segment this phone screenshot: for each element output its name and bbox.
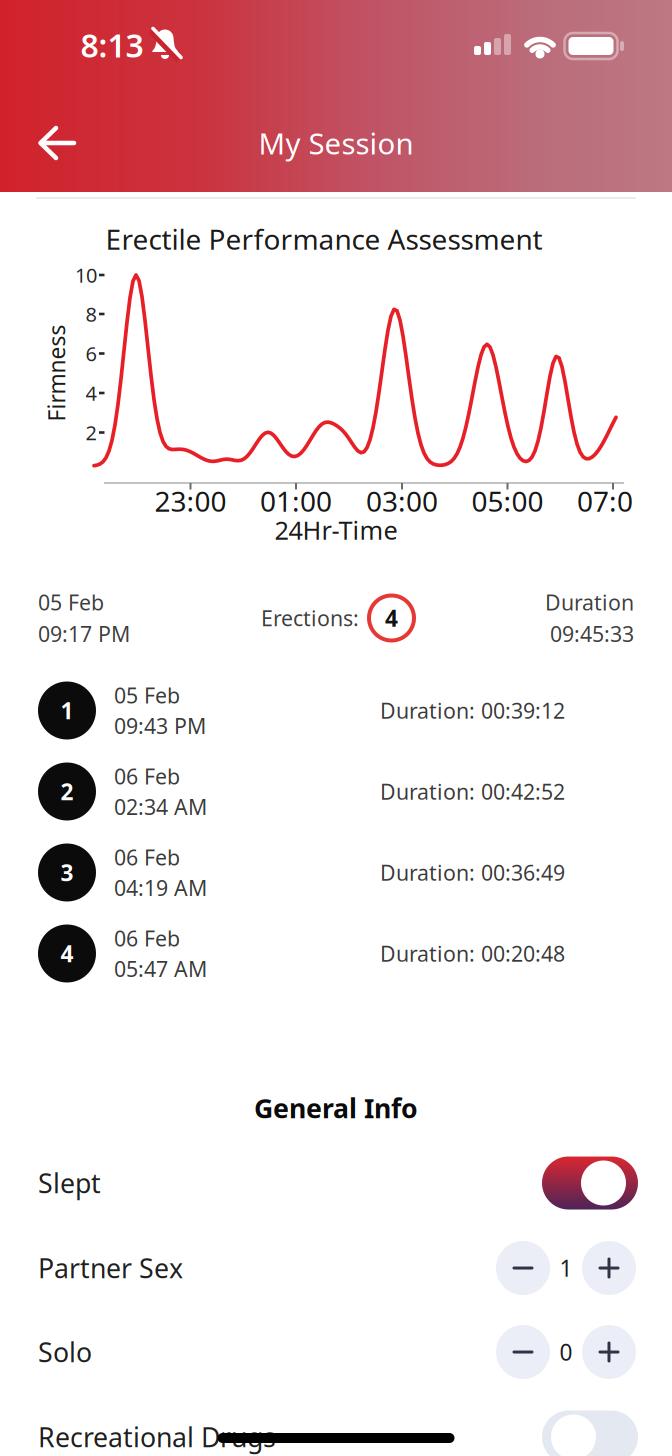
staticText: 8:13: [80, 24, 143, 66]
staticText: Duration: 00:20:48: [380, 939, 565, 968]
button[interactable]: Off: [542, 1410, 638, 1456]
staticText: Duration: 00:39:12: [380, 696, 565, 725]
staticText: 23:00: [154, 482, 226, 520]
staticText: 05 Feb: [114, 681, 180, 709]
button[interactable]: On: [542, 1156, 638, 1209]
staticText: Duration: 00:36:49: [380, 858, 565, 887]
staticText: Duration: 00:42:52: [380, 777, 565, 806]
staticText: 4: [385, 603, 398, 633]
staticText: 10: [75, 262, 97, 288]
staticText: 0: [559, 1337, 572, 1367]
staticText: 4: [60, 938, 73, 968]
staticText: 09:45:33: [550, 619, 634, 648]
staticText: General Info: [254, 1090, 418, 1126]
staticText: 2: [60, 776, 73, 806]
button[interactable]: Back: [19, 105, 95, 181]
staticText: Slept: [38, 1165, 101, 1201]
staticText: Partner Sex: [38, 1250, 183, 1286]
staticText: 05:00: [471, 482, 543, 520]
staticText: Recreational Drugs: [38, 1419, 276, 1455]
staticText: 03:00: [366, 482, 438, 520]
staticText: 8: [85, 301, 96, 327]
staticText: 2: [85, 419, 96, 446]
staticText: 04:19 AM: [114, 873, 207, 902]
staticText: 6: [85, 340, 96, 367]
staticText: 06 Feb: [114, 762, 180, 790]
staticText: Erectile Performance Assessment: [105, 220, 542, 258]
staticText: 07:0: [577, 482, 633, 520]
staticText: My Session: [258, 123, 413, 162]
staticText: 01:00: [260, 482, 332, 520]
staticText: 24Hr-Time: [274, 513, 397, 547]
staticText: Duration: [545, 588, 634, 616]
staticText: 3: [60, 857, 73, 887]
staticText: 06 Feb: [114, 843, 180, 871]
button[interactable]: Decrement: [496, 1325, 550, 1379]
staticText: Firmness: [8, 358, 105, 388]
staticText: 05:47 AM: [114, 954, 207, 983]
staticText: Erections:: [261, 604, 359, 632]
button[interactable]: Increment: [582, 1241, 636, 1295]
button[interactable]: Decrement: [496, 1241, 550, 1295]
staticText: Solo: [38, 1334, 92, 1370]
staticText: 09:43 PM: [114, 711, 206, 740]
staticText: 06 Feb: [114, 924, 180, 952]
staticText: 05 Feb: [38, 588, 104, 616]
button[interactable]: Increment: [582, 1325, 636, 1379]
staticText: 4: [85, 380, 96, 406]
staticText: 1: [60, 695, 73, 725]
staticText: 1: [559, 1253, 572, 1283]
staticText: 09:17 PM: [38, 619, 130, 648]
staticText: 02:34 AM: [114, 792, 207, 821]
